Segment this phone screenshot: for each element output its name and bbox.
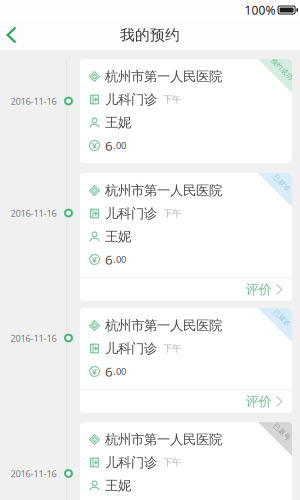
staticText: 杭州市第一人民医院 — [105, 68, 222, 85]
staticText: 2016-11-16 — [10, 332, 56, 344]
staticText: 100% — [245, 2, 276, 18]
staticText: 儿科门诊 — [105, 205, 157, 222]
staticText: 下午 — [163, 457, 181, 468]
button[interactable]: 杭州市第一人民医院 — [80, 59, 292, 163]
staticText: 6 — [105, 251, 113, 268]
staticText: 王妮 — [105, 228, 131, 245]
staticText: 2016-11-16 — [10, 95, 56, 107]
staticText: 下午 — [163, 343, 181, 354]
staticText: 我的预约 — [120, 26, 180, 44]
staticText: 6 — [105, 363, 113, 380]
staticText: 评价 — [245, 281, 271, 298]
staticText: 6 — [105, 137, 113, 154]
staticText: 杭州市第一人民医院 — [105, 317, 222, 334]
staticText: .00 — [113, 139, 126, 152]
staticText: 2016-11-16 — [10, 467, 56, 480]
staticText: 杭州市第一人民医院 — [105, 182, 222, 199]
button[interactable]: Back — [0, 20, 25, 49]
staticText: 儿科门诊 — [105, 91, 157, 108]
staticText: 预约成功 — [268, 65, 296, 73]
button[interactable]: 杭州市第一人民医院 — [80, 422, 292, 500]
staticText: .00 — [113, 365, 126, 378]
button[interactable]: 杭州市第一人民医院 — [80, 173, 292, 301]
staticText: .00 — [113, 253, 126, 266]
staticText: 已就诊 — [271, 314, 292, 322]
staticText: 儿科门诊 — [105, 454, 157, 471]
staticText: 王妮 — [105, 477, 131, 494]
staticText: 2016-11-16 — [10, 207, 56, 219]
staticText: 评价 — [245, 393, 271, 410]
button[interactable]: 杭州市第一人民医院 — [80, 308, 292, 413]
staticText: 下午 — [163, 94, 181, 105]
staticText: 已就诊 — [271, 179, 292, 187]
staticText: 已退号 — [271, 428, 292, 436]
staticText: 王妮 — [105, 114, 131, 131]
staticText: 儿科门诊 — [105, 340, 157, 357]
staticText: 下午 — [163, 208, 181, 219]
staticText: 杭州市第一人民医院 — [105, 431, 222, 448]
